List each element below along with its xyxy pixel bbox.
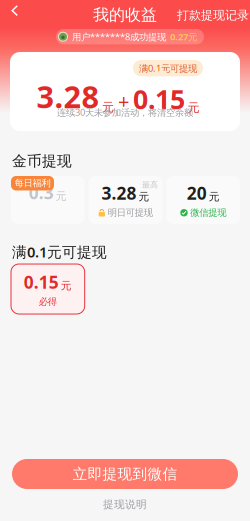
- staticText: 立即提现到微信: [72, 465, 177, 483]
- button[interactable]: 0.3: [11, 176, 85, 224]
- button[interactable]: Back: [0, 0, 28, 22]
- staticText: 0.15: [133, 81, 185, 117]
- staticText: 元: [102, 100, 114, 115]
- staticText: 明日可提现: [108, 207, 153, 218]
- button[interactable]: 0.15: [11, 264, 85, 314]
- staticText: 满0.1元可提现: [139, 62, 197, 74]
- staticText: 打款提现记录: [177, 8, 249, 23]
- staticText: 3.28: [102, 181, 137, 204]
- staticText: 0.15: [24, 270, 59, 293]
- staticText: 0.3: [29, 181, 54, 204]
- staticText: 元: [56, 190, 67, 203]
- button[interactable]: 20: [166, 176, 240, 224]
- button[interactable]: 打款提现记录: [177, 6, 249, 25]
- staticText: 每日福利: [14, 177, 50, 189]
- staticText: 最高: [142, 180, 158, 190]
- staticText: 必得: [39, 296, 57, 307]
- button[interactable]: 提现说明: [103, 498, 147, 511]
- staticText: 微信提现: [190, 207, 226, 218]
- staticText: 元: [61, 279, 72, 292]
- staticText: 用户*******8成功提现: [72, 30, 166, 43]
- staticText: 满0.1元可提现: [12, 242, 107, 261]
- staticText: 元: [209, 190, 220, 203]
- staticText: 0.27元: [170, 30, 197, 43]
- staticText: 我的收益: [93, 5, 157, 25]
- button[interactable]: 立即提现到微信: [12, 459, 238, 489]
- staticText: 连续30天未参加活动，将清空余额: [57, 106, 193, 118]
- staticText: 3.28: [36, 76, 99, 117]
- staticText: +: [118, 88, 129, 114]
- staticText: 元: [139, 190, 150, 203]
- button[interactable]: 最高: [89, 176, 162, 224]
- staticText: 元: [187, 100, 199, 115]
- staticText: 20: [187, 181, 207, 204]
- staticText: 提现说明: [103, 498, 147, 511]
- staticText: 金币提现: [12, 152, 72, 170]
